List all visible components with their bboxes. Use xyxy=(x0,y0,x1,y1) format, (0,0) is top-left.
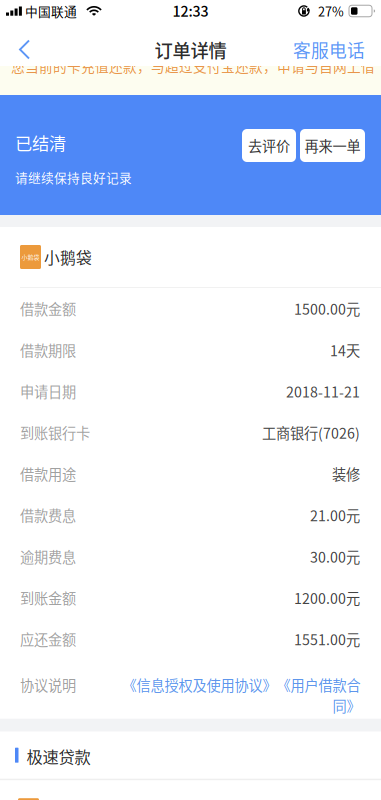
staticText: 申请日期 xyxy=(20,381,76,402)
staticText: 客服电话 xyxy=(293,37,365,62)
staticText: 借款金额 xyxy=(20,298,76,319)
staticText: 30.00元 xyxy=(310,546,360,567)
button[interactable]: 客服电话 xyxy=(279,22,381,66)
staticText: 借款期限 xyxy=(20,340,76,360)
staticText: 27% xyxy=(318,2,344,20)
staticText: 借款用途 xyxy=(20,464,76,484)
staticText: 极速贷款 xyxy=(26,744,90,768)
button[interactable]: 返回 xyxy=(0,22,44,66)
staticText: 再来一单 xyxy=(304,135,360,156)
staticText: 《信息授权及使用协议》《用户借款合同》 xyxy=(122,675,360,716)
staticText: 2018-11-21 xyxy=(286,381,360,402)
staticText: 21.00元 xyxy=(310,505,360,525)
staticText: 1200.00元 xyxy=(294,587,360,608)
staticText: 借款费息 xyxy=(20,505,76,525)
staticText: 小鹅袋 xyxy=(44,246,92,268)
staticText: 到账银行卡 xyxy=(20,422,90,443)
staticText: 装修 xyxy=(332,464,360,484)
staticText: 工商银行(7026) xyxy=(262,422,360,443)
staticText: 应还金额 xyxy=(20,629,76,649)
staticText: 订单详情 xyxy=(154,36,226,63)
staticText: 中国联通 xyxy=(25,2,77,20)
staticText: 到账金额 xyxy=(20,587,76,608)
staticText: 协议说明 xyxy=(20,675,76,695)
button[interactable]: 去评价 xyxy=(242,129,296,162)
staticText: 去评价 xyxy=(248,135,290,156)
button[interactable]: 再来一单 xyxy=(296,129,365,162)
staticText: 逾期费息 xyxy=(20,546,76,567)
staticText: 1551.00元 xyxy=(294,629,360,649)
staticText: 12:33 xyxy=(172,0,208,21)
button[interactable]: 《信息授权及使用协议》《用户借款合同》 xyxy=(120,663,360,716)
staticText: 已结清 xyxy=(15,130,66,155)
staticText: 1500.00元 xyxy=(294,298,360,319)
staticText: 请继续保持良好记录 xyxy=(15,168,132,186)
staticText: 您当前的卡充值还款，与超过支付宝还款，申请与自网上借 xyxy=(11,56,375,76)
staticText: 小鹅袋 xyxy=(21,253,39,261)
staticText: 14天 xyxy=(330,340,360,360)
